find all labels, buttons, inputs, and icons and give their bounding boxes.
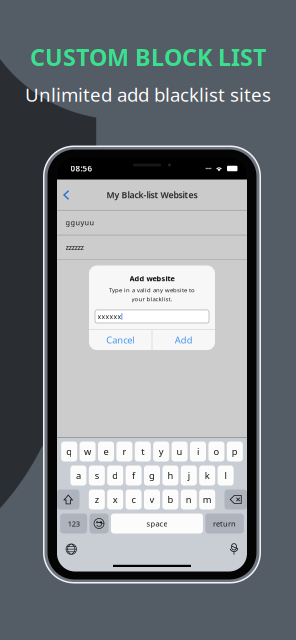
staticText: k <box>205 469 210 482</box>
staticText: v <box>149 493 154 506</box>
button[interactable]: k <box>199 465 215 485</box>
staticText: t <box>141 445 144 458</box>
button[interactable]: m <box>199 489 215 509</box>
button[interactable]: l <box>218 465 234 485</box>
staticText: space <box>146 518 167 529</box>
button[interactable]: Next keyboard <box>62 540 80 558</box>
staticText: x <box>113 493 118 506</box>
button[interactable]: Delete <box>224 489 247 509</box>
button[interactable]: g <box>144 465 160 485</box>
staticText: o <box>213 445 219 458</box>
staticText: y <box>159 445 164 458</box>
button[interactable]: j <box>181 465 197 485</box>
staticText: s <box>95 469 99 482</box>
button[interactable]: r <box>116 441 132 461</box>
staticText: r <box>122 445 126 458</box>
staticText: gguyuu <box>65 217 94 227</box>
button[interactable]: zzzzzz <box>57 235 247 260</box>
button[interactable]: 123 <box>60 513 87 533</box>
staticText: 08:56 <box>70 163 92 174</box>
staticText: m <box>203 493 212 506</box>
staticText: xxxxxx <box>97 312 121 321</box>
button[interactable]: Add <box>152 330 215 350</box>
staticText: Unlimited add blacklist sites <box>25 82 271 107</box>
staticText: d <box>112 469 118 482</box>
staticText: e <box>103 445 108 458</box>
button[interactable]: x <box>107 489 123 509</box>
button[interactable]: n <box>181 489 197 509</box>
staticText: 123 <box>68 518 80 529</box>
button[interactable]: e <box>98 441 114 461</box>
staticText: u <box>177 445 183 458</box>
staticText: your blacklist. <box>131 295 172 303</box>
button[interactable]: i <box>190 441 206 461</box>
staticText: Add website <box>129 273 174 283</box>
button[interactable]: h <box>162 465 178 485</box>
staticText: CUSTOM BLOCK LIST <box>30 41 266 73</box>
button[interactable]: return <box>205 513 244 533</box>
staticText: w <box>84 445 91 458</box>
staticText: b <box>167 493 173 506</box>
staticText: c <box>132 493 136 506</box>
staticText: return <box>213 518 236 529</box>
staticText: h <box>167 469 173 482</box>
button[interactable]: Cancel <box>89 330 152 350</box>
button[interactable]: o <box>208 441 224 461</box>
button[interactable]: f <box>126 465 142 485</box>
staticText: l <box>225 469 227 482</box>
button[interactable]: b <box>162 489 178 509</box>
button[interactable]: q <box>61 441 77 461</box>
staticText: g <box>149 469 155 482</box>
button[interactable]: c <box>126 489 142 509</box>
staticText: p <box>232 445 238 458</box>
button[interactable]: Emoji <box>90 513 109 533</box>
staticText: j <box>188 469 190 482</box>
staticText: a <box>76 469 81 482</box>
button[interactable]: Dictate <box>226 540 242 559</box>
staticText: zzzzzz <box>65 242 83 252</box>
button[interactable]: y <box>153 441 169 461</box>
button[interactable]: s <box>89 465 105 485</box>
button[interactable]: d <box>107 465 123 485</box>
button[interactable]: w <box>80 441 96 461</box>
button[interactable]: u <box>172 441 188 461</box>
staticText: f <box>132 469 135 482</box>
button[interactable]: Shift <box>57 489 79 509</box>
staticText: Cancel <box>106 333 134 346</box>
staticText: My Black-list Websites <box>106 189 197 201</box>
button[interactable]: space <box>111 513 203 533</box>
button[interactable]: p <box>227 441 243 461</box>
button[interactable]: a <box>70 465 86 485</box>
button[interactable]: Back <box>57 183 78 207</box>
staticText: q <box>66 445 72 458</box>
button[interactable]: z <box>89 489 105 509</box>
staticText: z <box>95 493 99 506</box>
staticText: Type in a valid any website to <box>109 286 195 294</box>
button[interactable]: v <box>144 489 160 509</box>
button[interactable]: gguyuu <box>57 210 247 235</box>
staticText: n <box>186 493 192 506</box>
staticText: Add <box>175 333 193 346</box>
staticText: i <box>197 445 199 458</box>
button[interactable]: t <box>135 441 151 461</box>
